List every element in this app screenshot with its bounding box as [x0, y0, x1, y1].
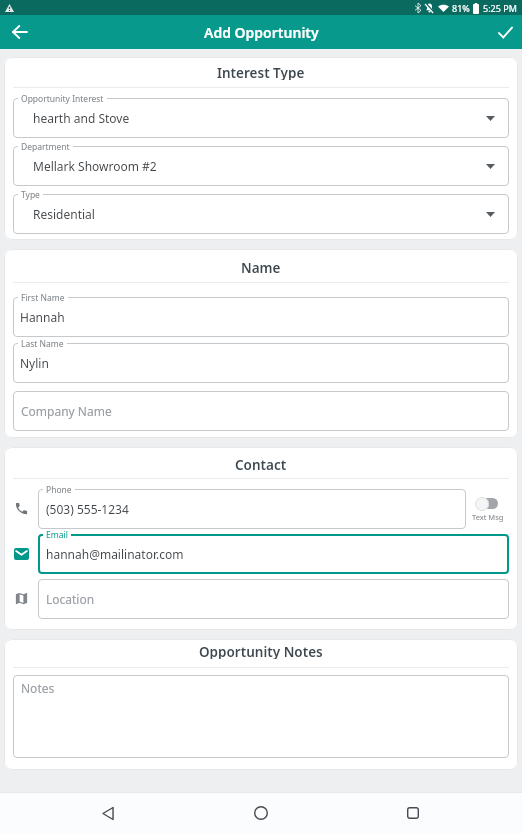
button[interactable]: Company Name: [13, 391, 509, 431]
staticText: 81%: [452, 2, 470, 14]
staticText: Company Name: [21, 403, 112, 419]
staticText: hearth and Stove: [33, 110, 130, 126]
button[interactable]: Nylin: [13, 338, 509, 383]
button[interactable]: Residential: [13, 189, 509, 234]
staticText: (503) 555-1234: [46, 501, 129, 517]
staticText: Department: [21, 141, 70, 153]
staticText: First Name: [21, 292, 65, 304]
button[interactable]: [7, 19, 33, 45]
staticText: Opportunity Interest: [21, 93, 104, 105]
staticText: Text Msg: [472, 512, 504, 522]
staticText: Type: [21, 189, 40, 201]
button[interactable]: hearth and Stove: [13, 93, 509, 138]
staticText: Name: [241, 259, 281, 275]
staticText: 5:25 PM: [483, 2, 517, 14]
button[interactable]: Mellark Showroom #2: [13, 141, 509, 186]
staticText: Opportunity Notes: [199, 643, 323, 659]
staticText: hannah@mailinator.com: [46, 546, 184, 562]
button[interactable]: Notes: [13, 675, 509, 758]
button[interactable]: hannah@mailinator.com: [38, 529, 509, 574]
staticText: Hannah: [20, 309, 65, 325]
button[interactable]: [245, 797, 277, 829]
staticText: Contact: [235, 456, 287, 472]
button[interactable]: [493, 20, 517, 44]
staticText: Email: [46, 529, 68, 541]
staticText: Residential: [33, 206, 95, 222]
staticText: Mellark Showroom #2: [33, 158, 157, 174]
staticText: Interest Type: [217, 64, 305, 80]
button[interactable]: (503) 555-1234: [38, 484, 466, 529]
button[interactable]: Text Msg: [472, 496, 504, 522]
button[interactable]: Hannah: [13, 292, 509, 337]
staticText: Nylin: [20, 355, 49, 371]
button[interactable]: [397, 797, 429, 829]
staticText: Notes: [21, 680, 55, 696]
button[interactable]: Location: [38, 579, 509, 619]
staticText: Phone: [46, 484, 72, 496]
staticText: Last Name: [21, 338, 64, 350]
staticText: Location: [46, 591, 95, 607]
button[interactable]: [92, 797, 124, 829]
staticText: Add Opportunity: [204, 23, 319, 42]
